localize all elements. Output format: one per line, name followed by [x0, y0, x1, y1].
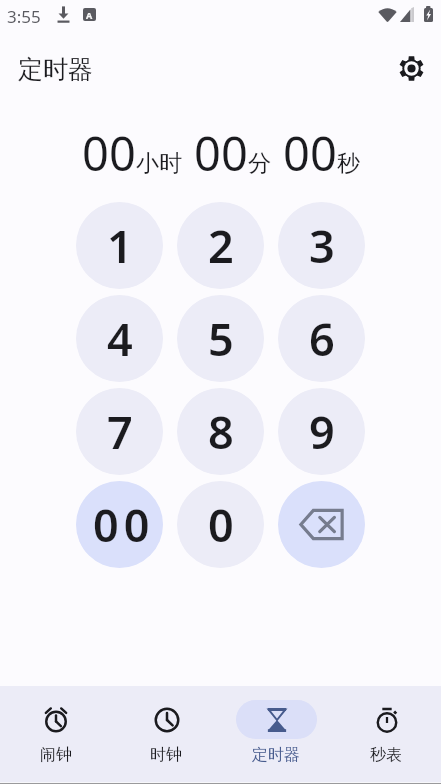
staticText: 分	[248, 149, 271, 178]
button[interactable]: Settings	[396, 53, 427, 84]
button[interactable]: 7	[76, 388, 163, 475]
staticText: 秒表	[370, 745, 402, 765]
button[interactable]: 秒表	[331, 686, 441, 765]
staticText: 6	[309, 308, 335, 369]
staticText: 定时器	[252, 745, 300, 765]
staticText: 1	[107, 215, 133, 276]
button[interactable]: 1	[76, 202, 163, 289]
staticText: 0	[208, 494, 234, 555]
staticText: 5	[208, 308, 234, 369]
staticText: 时钟	[150, 745, 182, 765]
button[interactable]: 6	[278, 295, 365, 382]
button[interactable]: 9	[278, 388, 365, 475]
button[interactable]: 4	[76, 295, 163, 382]
staticText: 定时器	[18, 54, 93, 85]
staticText: 2	[208, 215, 234, 276]
button[interactable]: 定时器	[221, 686, 331, 765]
button[interactable]: 3	[278, 202, 365, 289]
button[interactable]: 00	[76, 481, 163, 568]
button[interactable]: 0	[177, 481, 264, 568]
staticText: 7	[107, 401, 133, 462]
button[interactable]: 5	[177, 295, 264, 382]
staticText: 00	[93, 494, 155, 555]
staticText: 秒	[337, 149, 360, 178]
staticText: 00	[283, 121, 337, 185]
staticText: 闹钟	[40, 745, 72, 765]
button[interactable]: 8	[177, 388, 264, 475]
button[interactable]: 时钟	[111, 686, 221, 765]
staticText: 3:55	[7, 5, 41, 28]
button[interactable]: 2	[177, 202, 264, 289]
staticText: A	[86, 9, 93, 21]
button[interactable]: Backspace	[278, 481, 365, 568]
staticText: 9	[309, 401, 335, 462]
staticText: 3	[309, 215, 335, 276]
staticText: 4	[107, 308, 133, 369]
button[interactable]: 闹钟	[0, 686, 111, 765]
staticText: 00	[82, 121, 136, 185]
staticText: 00	[194, 121, 248, 185]
staticText: 小时	[136, 149, 182, 178]
staticText: 8	[208, 401, 234, 462]
